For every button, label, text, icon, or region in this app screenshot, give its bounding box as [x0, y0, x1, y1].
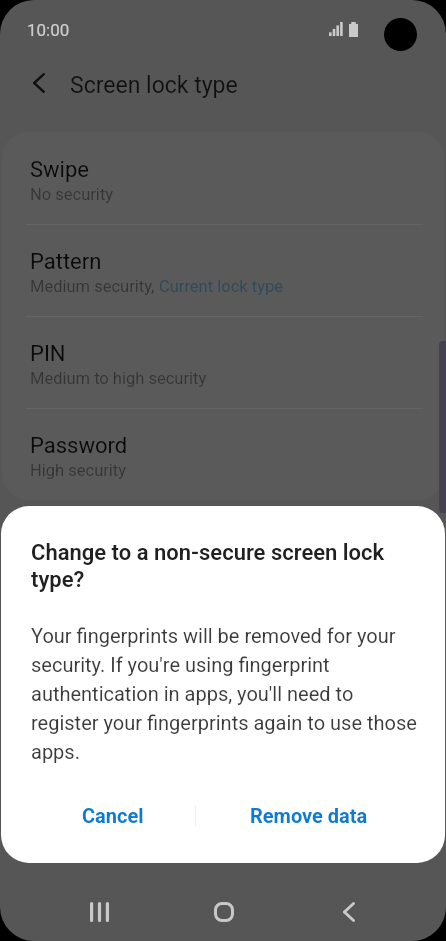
button[interactable]: Back [17, 61, 61, 105]
staticText: Password [30, 433, 128, 459]
staticText: Remove data [250, 804, 368, 827]
button[interactable]: Pattern [2, 224, 444, 316]
staticText: Medium to high security [30, 369, 207, 388]
staticText: High security [30, 461, 127, 480]
staticText: Your fingerprints will be removed for yo… [31, 624, 418, 764]
button[interactable]: PIN [2, 316, 444, 408]
button[interactable]: Back [313, 876, 385, 941]
staticText: Current lock type [159, 277, 283, 296]
staticText: Swipe [30, 157, 89, 183]
staticText: Medium security, [30, 277, 159, 296]
staticText: PIN [30, 341, 66, 367]
staticText: Change to a non-secure screen lock type? [31, 540, 399, 593]
button[interactable]: Remove data [196, 798, 421, 832]
staticText: No security [30, 185, 114, 204]
button[interactable]: Swipe [2, 132, 444, 224]
button[interactable]: Home [188, 876, 260, 941]
button[interactable]: Cancel [30, 798, 195, 832]
staticText: Cancel [82, 804, 144, 827]
staticText: Pattern [30, 249, 102, 275]
staticText: 10:00 [27, 20, 70, 40]
button[interactable]: Recent apps [63, 876, 135, 941]
button[interactable]: Password [2, 408, 444, 500]
staticText: Screen lock type [70, 72, 238, 99]
